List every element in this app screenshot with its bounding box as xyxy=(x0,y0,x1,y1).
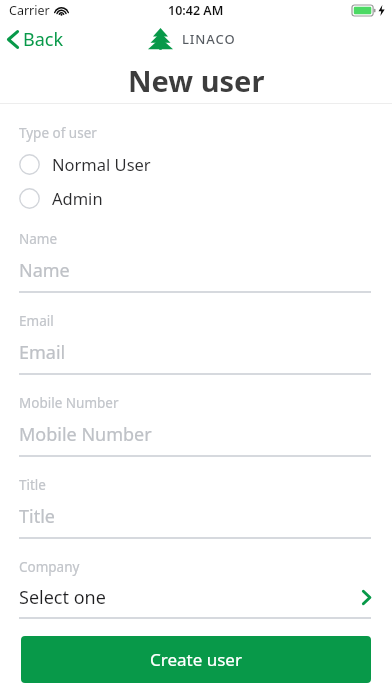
staticText: Name xyxy=(19,230,58,248)
button[interactable]: Normal User xyxy=(19,150,392,178)
button[interactable]: Company xyxy=(0,558,392,619)
button[interactable]: Email xyxy=(0,312,392,394)
staticText: Select one xyxy=(19,585,106,610)
staticText: Mobile Number xyxy=(19,394,119,412)
staticText: Title xyxy=(19,476,46,494)
button[interactable]: Admin xyxy=(19,184,392,212)
staticText: Name xyxy=(19,258,70,283)
button[interactable]: Mobile Number xyxy=(0,394,392,476)
staticText: Normal User xyxy=(52,153,151,175)
staticText: Email xyxy=(19,312,54,330)
staticText: Admin xyxy=(52,187,103,209)
staticText: Email xyxy=(19,340,66,365)
staticText: Mobile Number xyxy=(19,422,152,447)
staticText: LINACO xyxy=(182,30,236,48)
staticText: Title xyxy=(19,504,55,529)
staticText: Carrier xyxy=(9,2,50,19)
staticText: 10:42 AM xyxy=(168,2,224,19)
button[interactable]: Back xyxy=(0,23,74,56)
staticText: Create user xyxy=(150,648,242,671)
button[interactable]: Title xyxy=(0,476,392,558)
staticText: Company xyxy=(19,558,80,576)
button[interactable]: Create user xyxy=(21,636,371,683)
staticText: Type of user xyxy=(19,124,97,142)
staticText: New user xyxy=(128,61,265,100)
other: Select company xyxy=(362,590,371,605)
staticText: Back xyxy=(23,27,64,52)
button[interactable]: Name xyxy=(0,230,392,312)
